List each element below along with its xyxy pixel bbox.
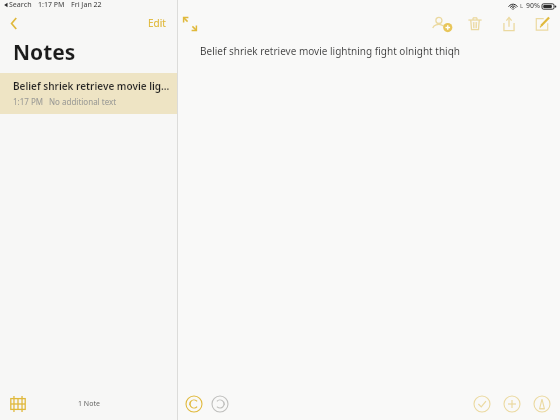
button[interactable]: Delete xyxy=(464,13,486,35)
button[interactable]: Redo xyxy=(210,394,230,414)
button[interactable]: Add attachment xyxy=(502,394,522,414)
staticText: No additional text xyxy=(49,96,117,107)
button[interactable]: Undo xyxy=(184,394,204,414)
staticText: 90% xyxy=(526,1,540,11)
button[interactable]: Back xyxy=(4,13,24,33)
staticText: 1 Note xyxy=(78,399,100,409)
staticText: Edit xyxy=(148,16,166,30)
button[interactable]: Expand xyxy=(180,14,202,34)
button[interactable]: Add people xyxy=(428,13,454,35)
button[interactable]: Folders xyxy=(8,395,28,413)
button[interactable]: Share xyxy=(498,13,520,35)
staticText: 1:17 PM xyxy=(38,0,65,10)
staticText: Fri Jan 22 xyxy=(71,0,102,10)
staticText: Belief shriek retrieve movie lightning f… xyxy=(200,44,460,58)
staticText: Belief shriek retrieve movie lig... xyxy=(13,79,170,93)
button[interactable]: Checklist xyxy=(472,394,492,414)
staticText: L xyxy=(520,2,524,10)
button[interactable]: Edit xyxy=(145,14,169,32)
staticText: 1:17 PM xyxy=(13,96,44,107)
button[interactable]: Belief shriek retrieve movie lig... xyxy=(0,73,177,114)
button[interactable]: Markup xyxy=(532,394,552,414)
staticText: Notes xyxy=(13,38,76,67)
staticText: Search xyxy=(9,0,32,10)
button[interactable]: New note xyxy=(532,13,554,35)
